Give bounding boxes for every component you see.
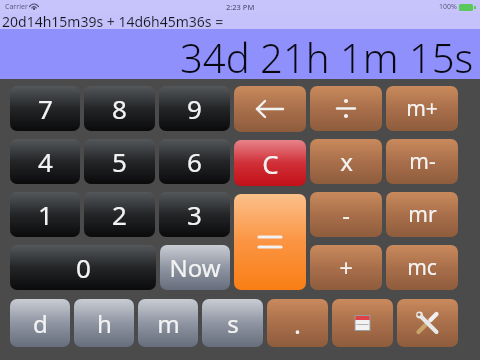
staticText: . [294, 306, 301, 341]
staticText: 0 [76, 250, 91, 285]
button[interactable]: m [138, 299, 198, 347]
button[interactable]: 9 [159, 86, 230, 131]
button[interactable]: 5 [84, 139, 155, 184]
staticText: Now [169, 251, 221, 284]
button[interactable]: 4 [10, 139, 80, 184]
staticText: x [340, 145, 353, 178]
button[interactable]: . [267, 299, 328, 347]
staticText: m+ [406, 94, 438, 123]
button[interactable]: 1 [10, 192, 80, 237]
button[interactable]: 0 [10, 245, 156, 290]
staticText: 100% [439, 2, 457, 12]
button[interactable]: 7 [10, 86, 80, 131]
button[interactable]: 8 [84, 86, 155, 131]
staticText: h [97, 307, 112, 340]
button[interactable]: m+ [386, 86, 458, 131]
staticText: 2:23 PM [226, 2, 255, 12]
staticText: 9 [187, 91, 202, 126]
staticText: m- [409, 147, 436, 176]
staticText: mc [407, 253, 437, 282]
staticText: 34d 21h 1m 15s [180, 30, 474, 80]
staticText: 2 [112, 197, 127, 232]
staticText: s [227, 307, 239, 340]
staticText: mr [408, 200, 437, 229]
button[interactable]: Divide [310, 86, 382, 131]
button[interactable]: Now [160, 245, 230, 290]
button[interactable]: Backspace [234, 86, 306, 132]
staticText: d [33, 307, 48, 340]
button[interactable]: d [10, 299, 70, 347]
staticText: 4 [38, 144, 53, 179]
staticText: m [157, 307, 180, 340]
staticText: 5 [112, 144, 127, 179]
button[interactable]: m- [386, 139, 458, 184]
button[interactable]: + [310, 245, 382, 290]
staticText: C [262, 146, 279, 181]
button[interactable]: C [234, 140, 306, 186]
button[interactable]: 3 [159, 192, 230, 237]
button[interactable]: x [310, 139, 382, 184]
button[interactable]: - [310, 192, 382, 237]
staticText: 3 [187, 197, 202, 232]
button[interactable]: Date picker [332, 299, 393, 347]
staticText: 6 [187, 144, 202, 179]
button[interactable]: 2 [84, 192, 155, 237]
staticText: 8 [112, 91, 127, 126]
button[interactable]: mc [386, 245, 458, 290]
staticText: + [339, 251, 353, 284]
button[interactable]: mr [386, 192, 458, 237]
staticText: Carrier [5, 2, 28, 12]
staticText: 1 [38, 197, 53, 232]
staticText: 20d14h15m39s + 14d6h45m36s = [2, 12, 224, 28]
button[interactable]: s [202, 299, 263, 347]
button[interactable]: Equals [234, 194, 306, 290]
staticText: 7 [38, 91, 53, 126]
staticText: - [342, 198, 350, 231]
button[interactable]: Settings [397, 299, 458, 347]
button[interactable]: h [74, 299, 134, 347]
button[interactable]: 6 [159, 139, 230, 184]
